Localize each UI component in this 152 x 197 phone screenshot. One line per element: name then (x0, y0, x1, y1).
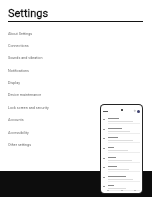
button[interactable]: Other settings (8, 139, 92, 150)
button[interactable]: Search (134, 110, 136, 112)
button[interactable] (101, 165, 142, 175)
button[interactable]: Sounds and vibration (8, 52, 92, 63)
staticText: About Settings (8, 32, 33, 36)
staticText: Notifications (8, 69, 29, 73)
button[interactable]: About Settings (8, 28, 92, 39)
staticText: Lock screen and security (8, 106, 49, 110)
button[interactable] (101, 146, 142, 156)
button[interactable]: Accessibility (8, 127, 92, 138)
button[interactable]: Lock screen and security (8, 102, 92, 113)
button[interactable] (101, 117, 142, 127)
staticText: Sounds and vibration (8, 56, 43, 60)
staticText: Accessibility (8, 131, 29, 135)
button[interactable] (101, 184, 142, 193)
button[interactable]: Display (8, 77, 92, 88)
button[interactable] (101, 175, 142, 185)
staticText: Connections (8, 44, 29, 48)
button[interactable] (101, 136, 142, 146)
button[interactable]: Accounts (8, 114, 92, 125)
button[interactable]: Notifications (8, 65, 92, 76)
button[interactable] (101, 127, 142, 137)
staticText: Accounts (8, 118, 24, 122)
staticText: Other settings (8, 143, 32, 147)
staticText: Settings (8, 7, 49, 20)
button[interactable]: Connections (8, 40, 92, 51)
staticText: Device maintenance (8, 93, 42, 97)
button[interactable] (101, 156, 142, 166)
staticText: Display (8, 81, 20, 85)
button[interactable]: Profile (137, 110, 140, 113)
button[interactable]: Device maintenance (8, 89, 92, 100)
